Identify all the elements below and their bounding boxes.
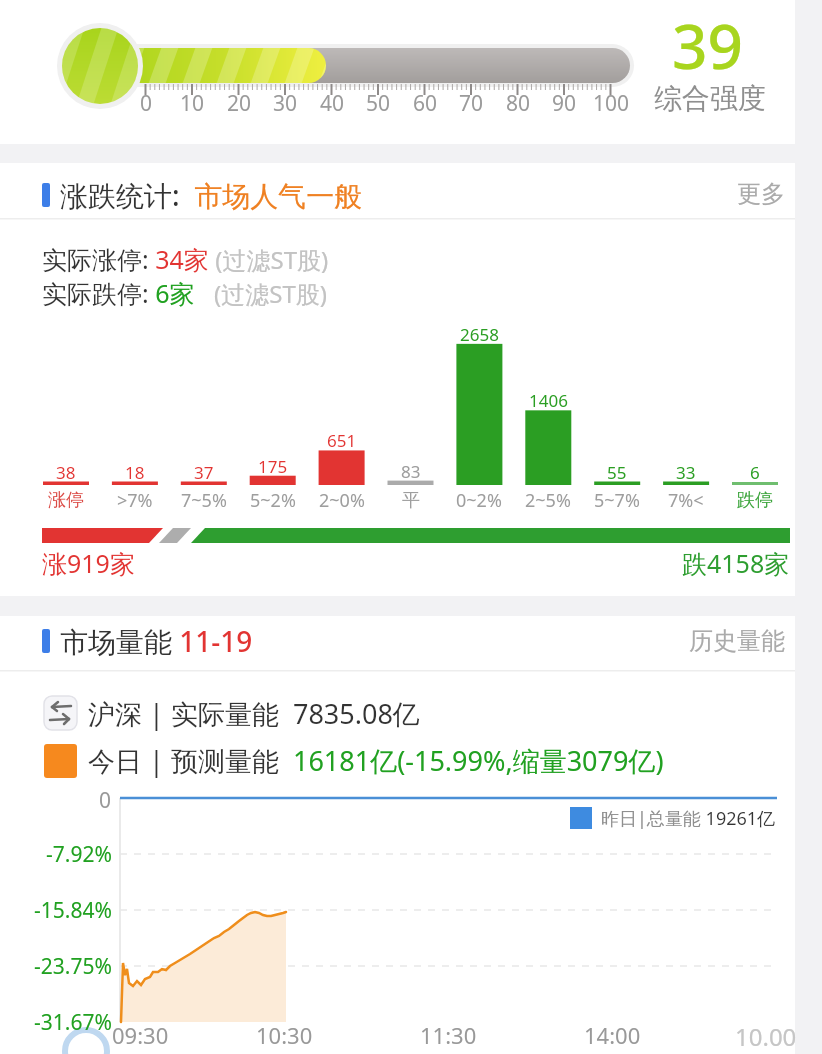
staticText: -15.84% <box>34 896 112 925</box>
staticText: 平 <box>402 489 420 512</box>
staticText: 5~2% <box>250 488 296 513</box>
staticText: -31.67% <box>34 1008 112 1037</box>
staticText: 历史量能 <box>689 626 785 656</box>
staticText: 80 <box>506 89 531 118</box>
staticText: 今日 | 预测量能 16181亿(-15.99%,缩量3079亿) <box>88 742 664 779</box>
staticText: 651 <box>327 429 357 452</box>
staticText: 11:30 <box>420 1020 477 1050</box>
staticText: 50 <box>366 89 391 118</box>
staticText: 涨919家 <box>42 546 135 580</box>
staticText: >7% <box>117 488 153 513</box>
staticText: -7.92% <box>46 840 112 869</box>
staticText: 30 <box>273 89 298 118</box>
staticText: 实际跌停: 6家 (过滤ST股) <box>42 276 327 310</box>
staticText: 10.00 <box>735 1020 797 1053</box>
staticText: 0~2% <box>456 488 502 513</box>
staticText: 2~5% <box>525 488 571 513</box>
staticText: 10 <box>180 89 205 118</box>
staticText: 6 <box>750 461 760 484</box>
staticText: 涨停 <box>48 489 84 512</box>
staticText: 90 <box>552 89 577 118</box>
staticText: 沪深 | 实际量能 7835.08亿 <box>88 695 420 732</box>
staticText: -23.75% <box>34 952 112 981</box>
button[interactable]: 历史量能 <box>585 616 785 666</box>
staticText: 18 <box>125 461 145 484</box>
staticText: 0 <box>140 89 153 118</box>
staticText: 昨日|总量能 19261亿 <box>601 806 776 831</box>
staticText: 1406 <box>529 389 568 412</box>
staticText: 40 <box>320 89 345 118</box>
staticText: 更多 <box>737 179 785 209</box>
staticText: 09:30 <box>112 1020 169 1050</box>
staticText: 实际涨停: 34家 (过滤ST股) <box>42 242 329 276</box>
staticText: 涨跌统计: 市场人气一般 <box>60 176 363 214</box>
staticText: 市场量能 11-19 <box>60 622 253 660</box>
staticText: 10:30 <box>256 1020 313 1050</box>
staticText: 跌停 <box>737 489 773 512</box>
staticText: 14:00 <box>584 1020 641 1050</box>
staticText: 2~0% <box>319 488 365 513</box>
staticText: 33 <box>676 461 696 484</box>
staticText: 20 <box>227 89 252 118</box>
staticText: 7%< <box>668 488 704 513</box>
staticText: 83 <box>401 460 421 483</box>
staticText: 0 <box>99 786 112 815</box>
staticText: 跌4158家 <box>682 546 790 580</box>
staticText: 37 <box>194 461 214 484</box>
staticText: 100 <box>593 89 630 118</box>
staticText: 55 <box>607 461 627 484</box>
staticText: 60 <box>413 89 438 118</box>
staticText: 175 <box>258 455 288 478</box>
staticText: 5~7% <box>594 488 640 513</box>
staticText: 39 <box>672 3 743 87</box>
staticText: 综合强度 <box>654 81 766 116</box>
staticText: 70 <box>459 89 484 118</box>
staticText: 2658 <box>460 323 499 346</box>
button[interactable]: 更多 <box>585 169 785 219</box>
staticText: 7~5% <box>181 488 227 513</box>
staticText: 38 <box>56 461 76 484</box>
